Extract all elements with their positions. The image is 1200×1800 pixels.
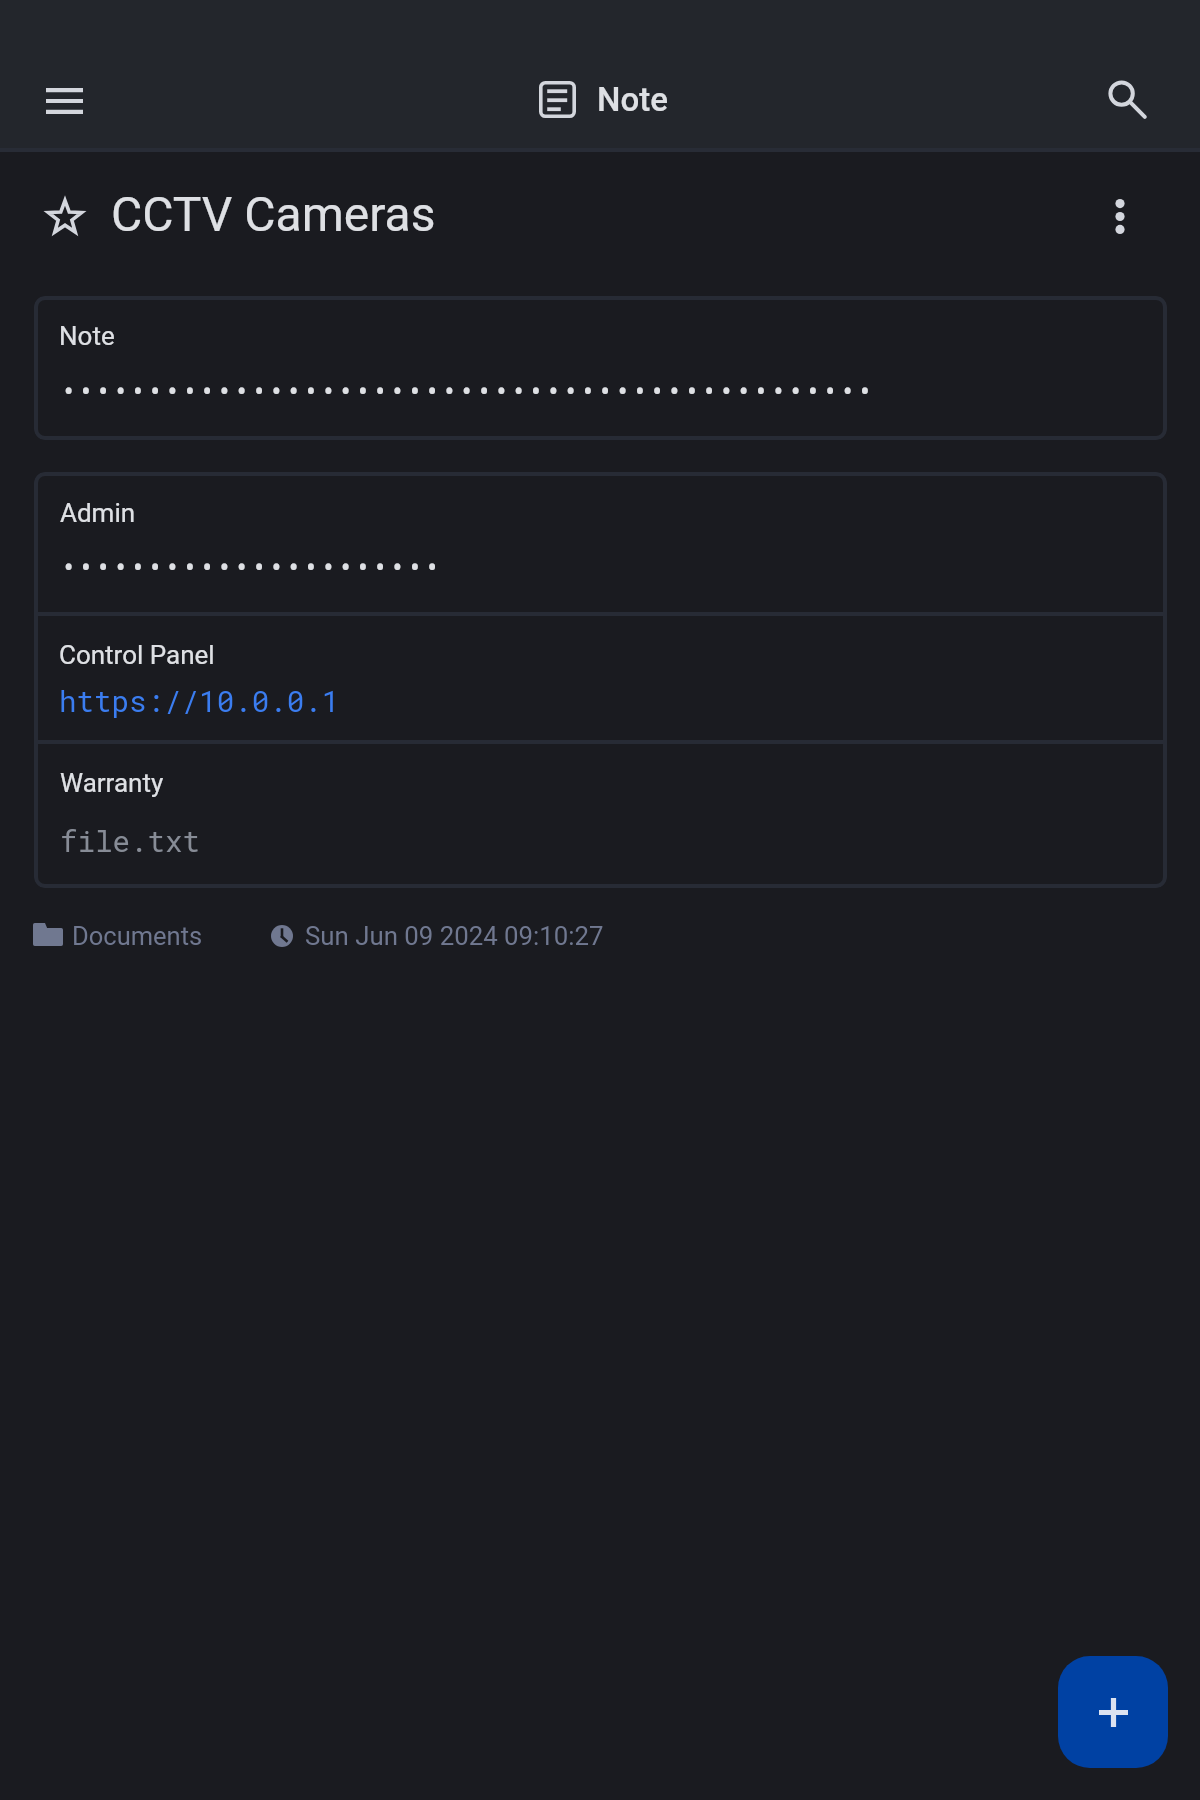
staticText: Sun Jun 09 2024 09:10:27 <box>305 921 604 951</box>
button[interactable]: More options <box>1084 180 1156 252</box>
staticText: Control Panel <box>59 640 215 670</box>
button[interactable]: Note <box>34 296 1167 440</box>
button[interactable]: Control Panel <box>34 616 1167 740</box>
staticText: Warranty <box>60 768 164 798</box>
staticText: •••••••••••••••••••••• <box>60 548 441 586</box>
staticText: Note <box>59 321 115 351</box>
staticText: ••••••••••••••••••••••••••••••••••••••••… <box>60 372 874 410</box>
button[interactable]: Open navigation menu <box>14 52 112 150</box>
button[interactable]: Admin <box>34 472 1167 612</box>
button[interactable]: Search <box>1078 50 1176 148</box>
staticText: Documents <box>72 921 203 951</box>
button[interactable]: CCTV Cameras <box>97 180 422 248</box>
staticText: Note <box>597 80 668 119</box>
button[interactable]: Favourite <box>31 182 99 250</box>
button[interactable]: Add note <box>1058 1656 1168 1768</box>
staticText: Admin <box>60 498 136 528</box>
staticText: CCTV Cameras <box>111 186 436 242</box>
staticText: https://10.0.0.1 <box>59 681 340 720</box>
staticText: file.txt <box>60 821 201 860</box>
button[interactable]: Warranty <box>34 744 1167 888</box>
